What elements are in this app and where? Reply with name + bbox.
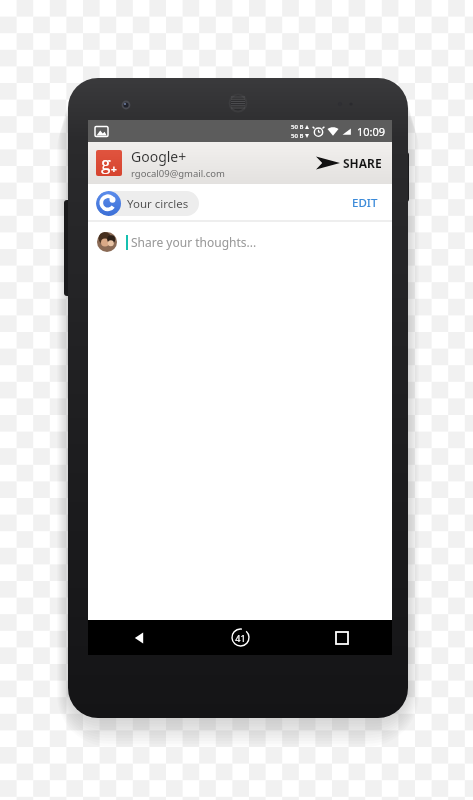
staticText: Share your thoughts... <box>131 234 257 250</box>
button[interactable]: Your circles <box>96 191 199 216</box>
button[interactable]: SHARE <box>314 151 384 175</box>
staticText: Your circles <box>127 196 189 212</box>
staticText: 50 B <box>291 123 304 131</box>
button[interactable]: Share your thoughts... <box>88 222 392 262</box>
staticText: 10:09 <box>357 124 386 139</box>
button[interactable]: Back <box>88 620 190 655</box>
button[interactable]: Home, 41 notifications <box>190 620 291 655</box>
staticText: 50 B <box>291 132 304 140</box>
staticText: Google+ <box>131 147 187 166</box>
staticText: rgocal09@gmail.com <box>131 167 225 180</box>
staticText: EDIT <box>352 195 378 211</box>
staticText: SHARE <box>343 155 382 171</box>
staticText: + <box>111 162 117 176</box>
button[interactable]: Recent apps <box>291 620 392 655</box>
button[interactable]: EDIT <box>346 191 384 215</box>
staticText: g <box>101 151 111 176</box>
staticText: 41 <box>235 632 246 644</box>
